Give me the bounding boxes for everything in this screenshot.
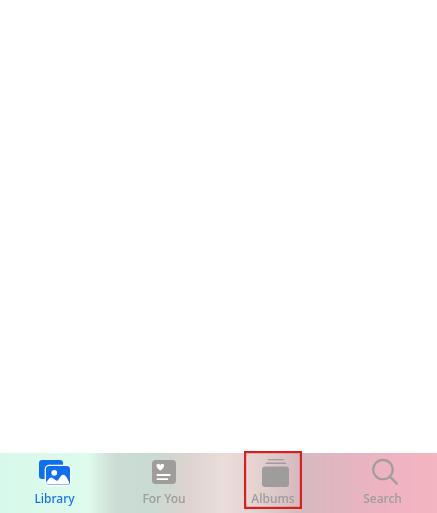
staticText: Library	[34, 490, 75, 506]
staticText: For You	[142, 490, 186, 506]
staticText: Albums	[251, 490, 295, 506]
staticText: Search	[363, 490, 402, 506]
button[interactable]: Library	[25, 453, 83, 509]
button[interactable]: Search	[353, 453, 411, 509]
button[interactable]: Albums	[244, 453, 302, 509]
button[interactable]: For You	[135, 453, 193, 509]
